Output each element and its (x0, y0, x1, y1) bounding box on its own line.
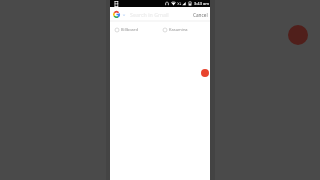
staticText: 3:43 am (194, 1, 209, 6)
staticText: Billboard (121, 27, 138, 32)
button[interactable]: Kasumina (163, 27, 188, 32)
button[interactable]: Cancel (189, 12, 210, 18)
staticText: Cancel (193, 12, 208, 18)
button[interactable]: Google account (113, 11, 120, 18)
staticText: Search in Gmail (130, 11, 169, 18)
staticText: Kasumina (169, 27, 188, 32)
button[interactable]: Billboard (115, 27, 138, 32)
